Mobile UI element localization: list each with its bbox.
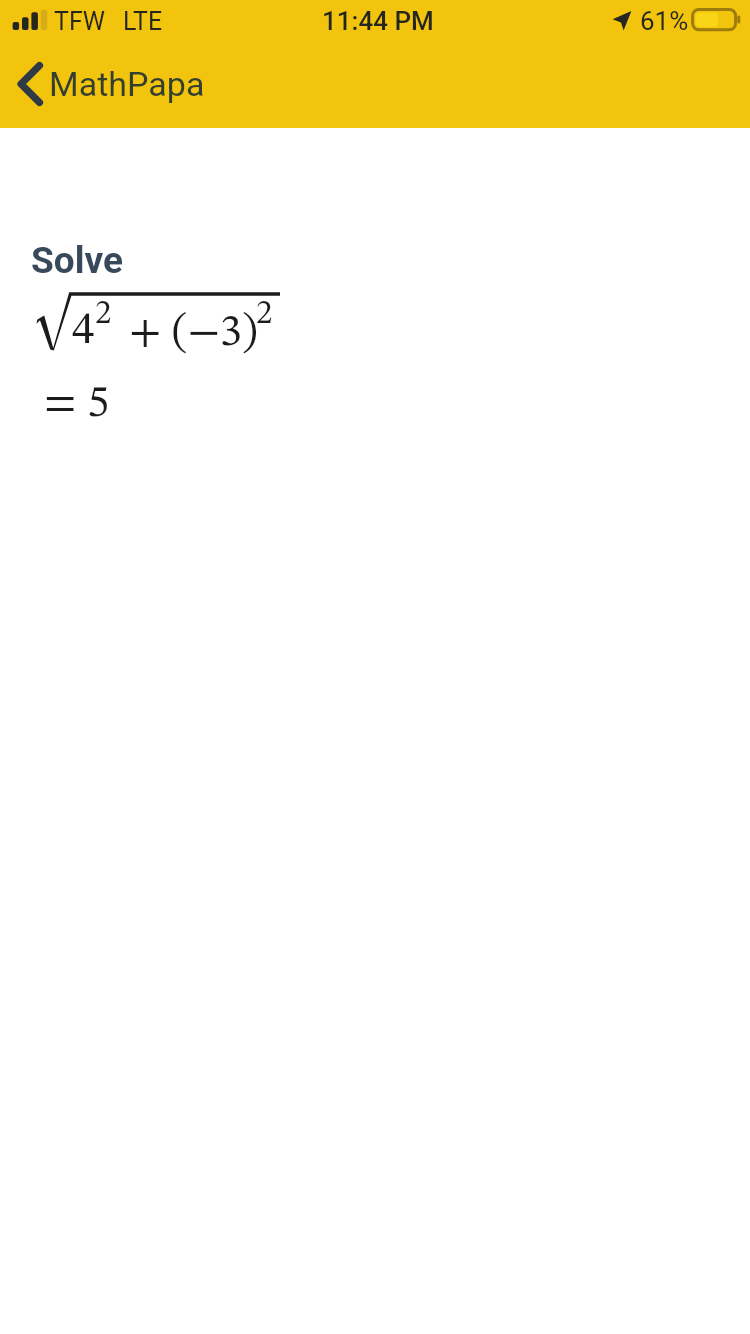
button[interactable]: Back <box>0 40 221 128</box>
button[interactable] <box>0 228 750 428</box>
other: Back <box>17 62 43 106</box>
staticText: 11:44 PM <box>322 6 434 36</box>
staticText: Solve <box>31 239 123 282</box>
staticText: LTE <box>123 7 163 36</box>
staticText: = 5 <box>44 382 110 427</box>
staticText: 4 <box>72 309 95 354</box>
staticText: TFW <box>54 7 105 36</box>
staticText: 61% <box>640 6 689 36</box>
staticText: 2 <box>256 298 273 331</box>
staticText: + (−3) <box>129 311 258 356</box>
staticText: 2 <box>95 298 112 331</box>
staticText: MathPapa <box>49 64 205 104</box>
